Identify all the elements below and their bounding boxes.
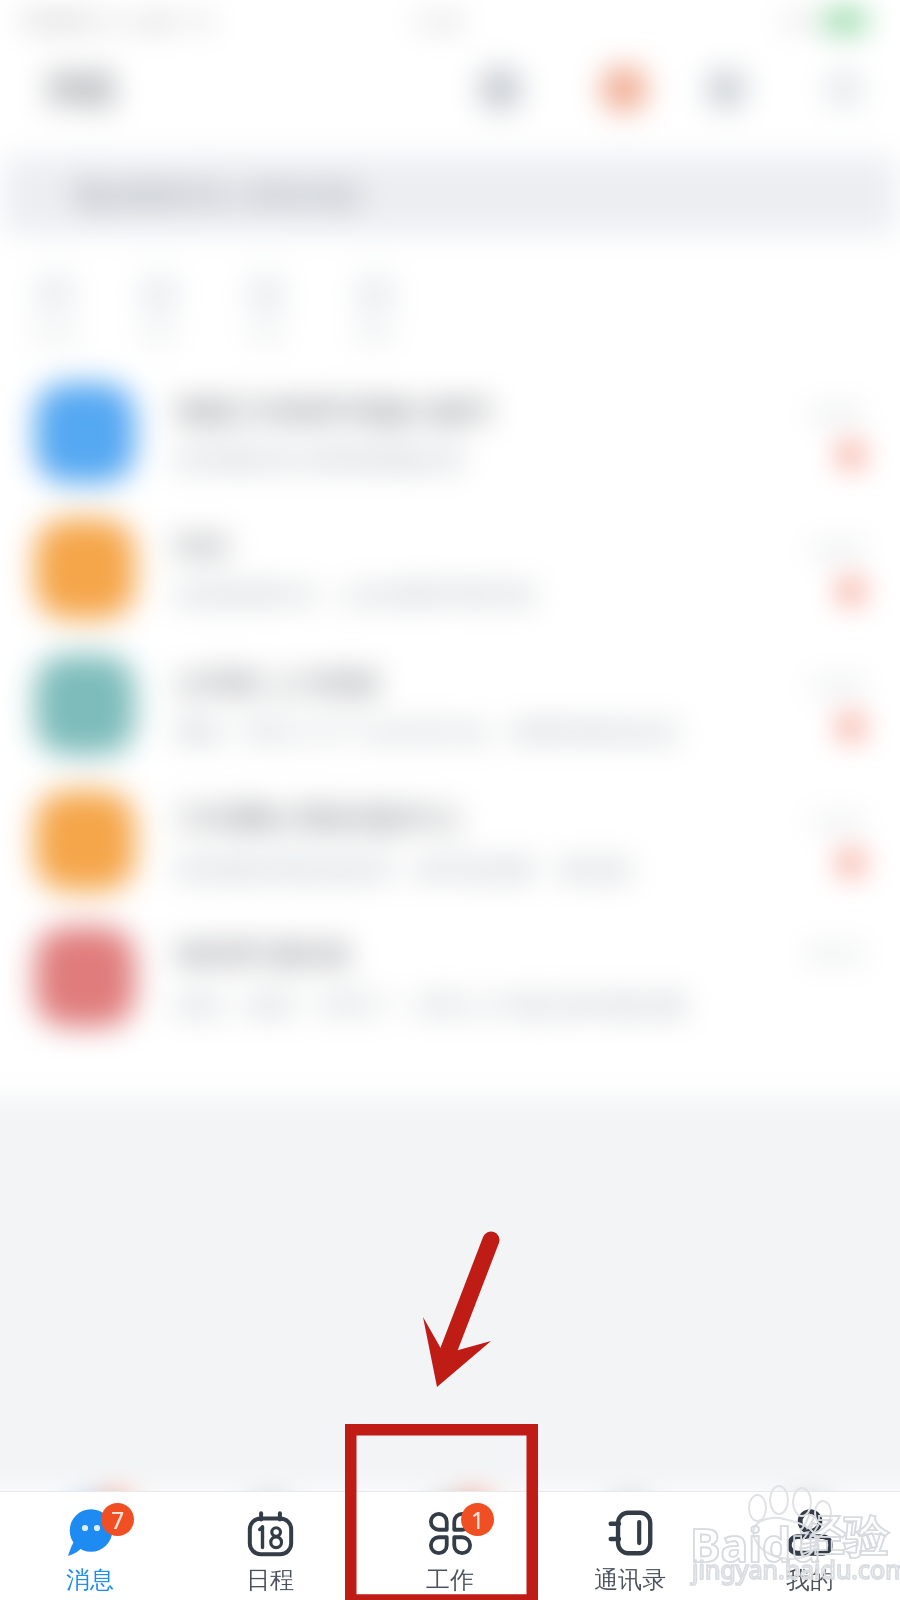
button[interactable]: 智能工作助理 客服小秘书 [0,365,900,501]
staticText: 张经理 项目组 [175,934,351,972]
button[interactable]: 工作通知 系统消息中心 [0,773,900,909]
staticText: 我的 [786,1565,834,1595]
button[interactable]: 公司群 人力资源 [0,637,900,773]
staticText: 搜索联系人群组消息 [110,178,362,213]
button[interactable]: 通讯录 [540,1492,720,1600]
button[interactable]: 工作 [360,1492,540,1600]
button[interactable]: DING [8,273,102,347]
staticText: 消息 [66,1565,114,1595]
staticText: Baidu [690,1513,821,1576]
staticText: 7 [111,1504,125,1535]
staticText: 1 [471,1504,485,1535]
staticText: 工作通知 系统消息中心 [175,798,463,836]
staticText: 公司群 人力资源 [175,663,379,701]
button[interactable]: Add [700,63,752,115]
staticText: 日程 [246,1565,294,1595]
staticText: 钉钉 [175,529,231,564]
button[interactable]: 张经理 项目组 [0,909,900,1045]
staticText: 工作 [426,1565,474,1595]
button[interactable]: Search [474,63,526,115]
button[interactable]: 钉钉 [0,501,900,637]
button[interactable]: 我的 [720,1492,900,1600]
staticText: 85% [783,10,817,33]
button[interactable]: 日程 [180,1492,360,1600]
staticText: 消息 [44,65,118,112]
button[interactable]: 签到 [316,274,434,346]
button[interactable]: Notifications [598,63,650,115]
button[interactable]: 搜索联系人群组消息 [4,156,896,234]
staticText: 经验 [800,1510,888,1565]
staticText: 欢迎使用钉钉，点击查看详情内容 [175,580,535,610]
button[interactable]: 日志 [216,274,316,346]
button[interactable]: More [818,63,870,115]
button[interactable]: 待办 [102,274,216,346]
staticText: jingyan.baidu.com [692,1552,900,1586]
button[interactable]: 消息 [0,1492,180,1600]
staticText: 智能工作助理 客服小秘书 [175,391,491,429]
staticText: 通讯录 [594,1565,666,1595]
